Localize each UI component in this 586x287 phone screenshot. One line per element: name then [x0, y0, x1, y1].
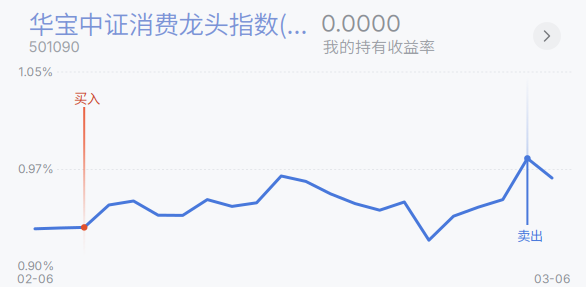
staticText: 卖出: [517, 225, 543, 245]
staticText: 02-06: [17, 272, 53, 286]
staticText: 0.0000: [321, 8, 401, 37]
staticText: 华宝中证消费龙头指数(...: [28, 5, 307, 41]
staticText: 03-06: [534, 272, 570, 286]
staticText: 1.05%: [18, 65, 53, 79]
staticText: 501090: [28, 38, 79, 56]
staticText: 我的持有收益率: [323, 34, 435, 58]
staticText: 买入: [74, 88, 100, 108]
staticText: 0.90%: [17, 259, 54, 273]
button[interactable]: More details: [533, 22, 561, 50]
staticText: 0.97%: [18, 162, 54, 176]
